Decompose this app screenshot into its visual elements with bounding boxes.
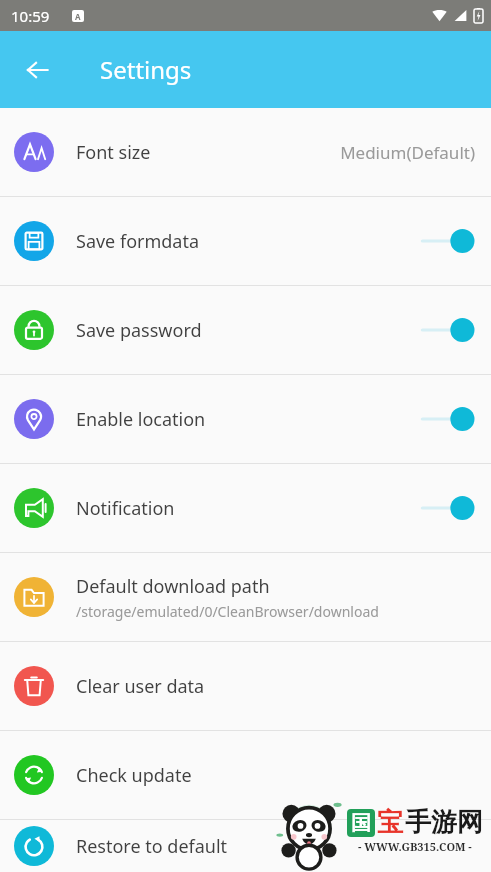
staticText: Enable location [76, 407, 206, 432]
button[interactable]: Save password [0, 286, 491, 374]
button[interactable]: Default download path [0, 553, 491, 641]
staticText: Check update [76, 763, 192, 788]
button[interactable]: Clear user data [0, 642, 491, 730]
staticText: 10:59 [11, 6, 50, 26]
staticText: 宝 [377, 806, 403, 839]
staticText: - WWW.GB315.COM - [358, 839, 472, 854]
staticText: Settings [100, 53, 192, 86]
staticText: Save password [76, 318, 202, 343]
staticText: /storage/emulated/0/CleanBrowser/downloa… [76, 602, 379, 621]
button[interactable]: Notification [0, 464, 491, 552]
staticText: 手游网 [405, 806, 483, 839]
staticText: Font size [76, 140, 151, 165]
button[interactable]: Toggle Notification [419, 491, 475, 525]
button[interactable]: Toggle Save formdata [419, 224, 475, 258]
staticText: Notification [76, 496, 175, 521]
button[interactable]: Toggle Enable location [419, 402, 475, 436]
button[interactable]: Back [14, 46, 62, 94]
staticText: 国 [351, 811, 371, 836]
staticText: Default download path [76, 574, 270, 599]
staticText: Restore to default [76, 834, 228, 859]
button[interactable]: Toggle Save password [419, 313, 475, 347]
button[interactable]: Enable location [0, 375, 491, 463]
staticText: Medium(Default) [340, 141, 475, 164]
button[interactable]: Font size [0, 108, 491, 196]
staticText: Clear user data [76, 674, 205, 699]
button[interactable]: Save formdata [0, 197, 491, 285]
button[interactable]: Restore to default [0, 820, 491, 872]
staticText: Save formdata [76, 229, 200, 254]
staticText: A [75, 11, 81, 22]
button[interactable]: Check update [0, 731, 491, 819]
